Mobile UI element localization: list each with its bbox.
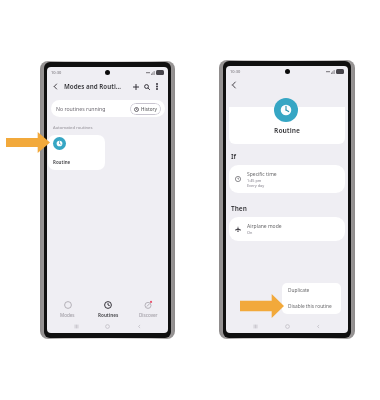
button[interactable]: Add xyxy=(130,81,141,92)
staticText: 10:30 xyxy=(51,70,62,75)
button[interactable]: Routine xyxy=(48,135,105,170)
button[interactable]: History xyxy=(130,103,161,115)
button[interactable]: Specific time xyxy=(229,165,345,193)
button[interactable]: Duplicate xyxy=(282,283,341,298)
staticText: Specific time xyxy=(247,171,277,178)
button[interactable]: No routines running xyxy=(51,100,165,117)
staticText: Then xyxy=(231,204,247,213)
staticText: Routine xyxy=(226,126,348,135)
staticText: Every day xyxy=(247,183,265,188)
staticText: On xyxy=(247,230,253,235)
button[interactable]: Back xyxy=(228,79,240,91)
button[interactable]: Airplane mode xyxy=(229,217,345,241)
staticText: Duplicate xyxy=(288,287,310,294)
button[interactable]: Back xyxy=(49,80,61,92)
button[interactable]: More options xyxy=(152,82,161,91)
button[interactable]: Search xyxy=(141,81,152,92)
staticText: Automated routines xyxy=(53,125,93,131)
staticText: Modes and Routi... xyxy=(64,82,130,90)
staticText: Routine xyxy=(53,159,71,165)
staticText: Routines xyxy=(98,312,119,318)
button[interactable]: Disable this routine xyxy=(282,298,341,314)
staticText: Airplane mode xyxy=(247,223,282,230)
button[interactable]: Modes xyxy=(47,298,88,319)
staticText: 10:30 xyxy=(230,69,241,74)
staticText: Modes xyxy=(60,312,75,318)
staticText: History xyxy=(141,106,157,112)
button[interactable]: Discover xyxy=(128,298,168,319)
staticText: Disable this routine xyxy=(288,303,332,310)
staticText: 1:45 pm xyxy=(247,178,262,183)
button[interactable]: Routines xyxy=(88,298,128,319)
staticText: No routines running xyxy=(56,105,130,112)
staticText: If xyxy=(231,152,236,161)
staticText: Discover xyxy=(139,312,158,318)
